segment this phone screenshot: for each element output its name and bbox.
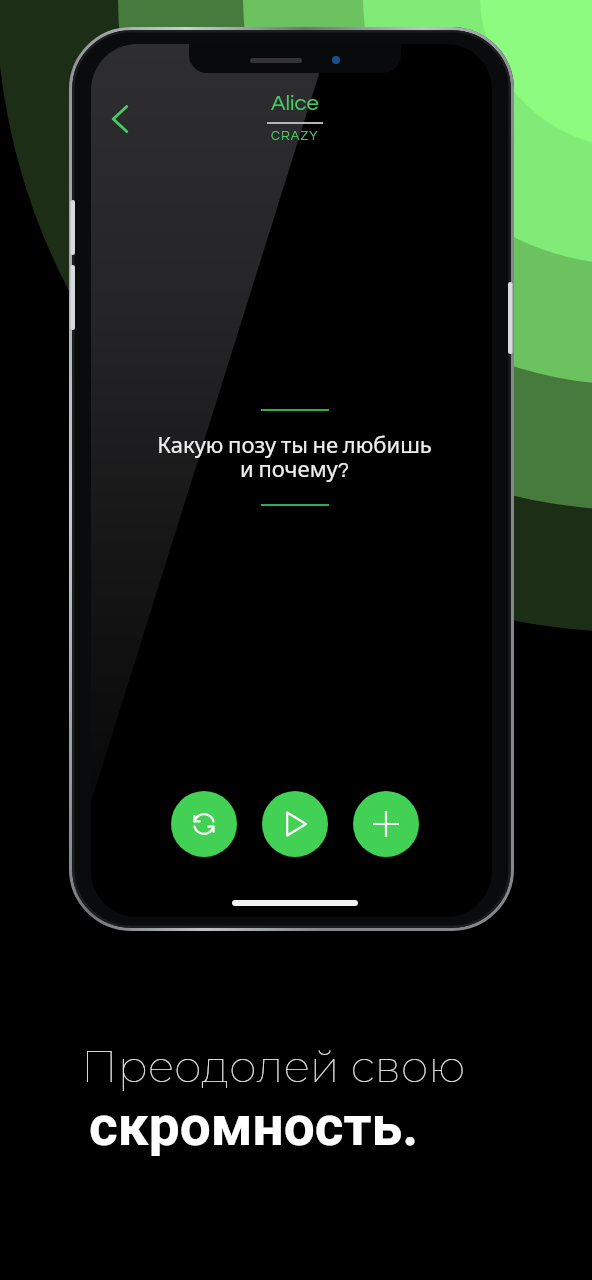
staticText: Какую позу ты не любишь и почему?	[157, 429, 432, 484]
staticText: CRAZY	[271, 129, 319, 142]
button[interactable]: Back	[99, 98, 141, 140]
staticText: Преодолей свою	[81, 1039, 466, 1093]
staticText: скромность.	[89, 1094, 419, 1158]
staticText: Alice	[271, 92, 319, 115]
button[interactable]: Play	[262, 791, 328, 857]
button[interactable]: Shuffle	[171, 791, 237, 857]
button[interactable]: Add	[353, 791, 419, 857]
